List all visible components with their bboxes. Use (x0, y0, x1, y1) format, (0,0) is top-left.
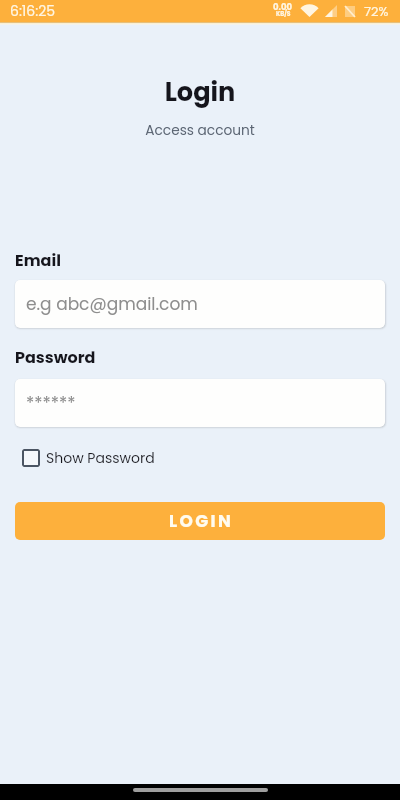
staticText: Email (15, 249, 61, 271)
staticText: 0.00 (273, 1, 293, 13)
other: Mobile data off (345, 6, 355, 17)
staticText: Login (0, 74, 400, 110)
staticText: KB/S (276, 10, 291, 18)
staticText: e.g abc@gmail.com (26, 292, 198, 316)
other: Signal (325, 5, 337, 17)
button[interactable]: Show Password (15, 444, 155, 472)
button[interactable]: LOGIN (15, 502, 385, 540)
button[interactable]: Password input (15, 379, 385, 427)
staticText: 6:16:25 (10, 1, 56, 21)
staticText: Show Password (46, 448, 155, 468)
staticText: Password (15, 346, 96, 368)
staticText: Access account (0, 121, 400, 140)
staticText: ****** (26, 391, 76, 415)
other: Wi-Fi (300, 5, 319, 17)
staticText: 72% (364, 2, 389, 20)
staticText: LOGIN (169, 509, 234, 533)
button[interactable]: Email input (15, 280, 385, 328)
